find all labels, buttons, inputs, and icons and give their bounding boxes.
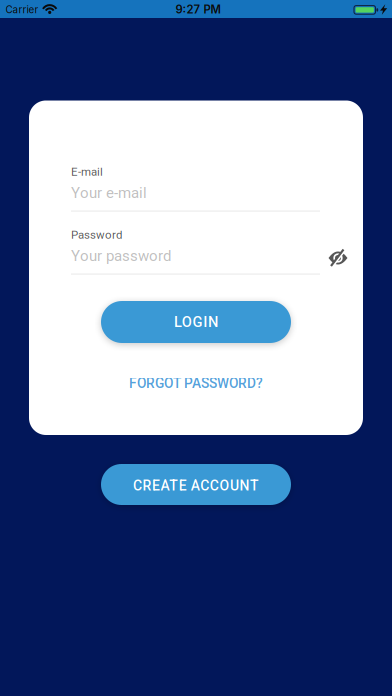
- staticText: CREATE ACCOUNT: [133, 477, 259, 494]
- staticText: LOGIN: [174, 313, 218, 331]
- staticText: 9:27 PM: [175, 2, 220, 16]
- button[interactable]: FORGOT PASSWORD?: [129, 375, 263, 391]
- staticText: FORGOT PASSWORD?: [129, 375, 263, 391]
- button[interactable]: LOGIN: [101, 301, 291, 343]
- button[interactable]: [326, 247, 350, 269]
- button[interactable]: E-mail: [71, 165, 341, 211]
- staticText: E-mail: [71, 165, 103, 178]
- staticText: Password: [71, 228, 122, 241]
- staticText: Your password: [71, 247, 171, 265]
- staticText: Carrier: [5, 4, 38, 15]
- button[interactable]: CREATE ACCOUNT: [101, 464, 291, 505]
- staticText: Your e-mail: [71, 184, 147, 202]
- button[interactable]: Password: [71, 228, 341, 274]
